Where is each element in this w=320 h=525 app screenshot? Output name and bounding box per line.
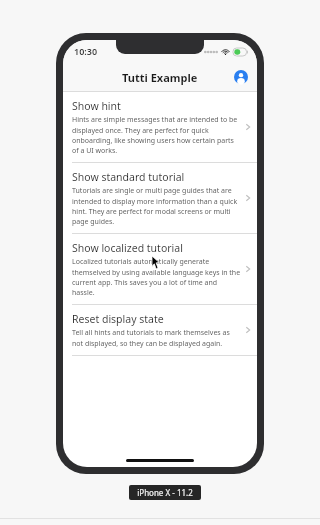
button[interactable]: Show localized tutorial <box>63 234 257 304</box>
staticText: Reset display state <box>72 312 164 326</box>
staticText: Show standard tutorial <box>72 170 185 184</box>
staticText: Show localized tutorial <box>72 241 183 255</box>
staticText: 10:30 <box>74 45 98 57</box>
staticText: Tutorials are single or multi page guide… <box>72 186 241 226</box>
button[interactable]: Show hint <box>63 92 257 162</box>
staticText: Hints are simple messages that are inten… <box>72 115 241 155</box>
staticText: Tell all hints and tutorials to mark the… <box>72 328 241 348</box>
staticText: Localized tutorials automatically genera… <box>72 257 241 297</box>
button[interactable]: Account <box>233 69 249 85</box>
staticText: iPhone X - 11.2 <box>137 487 193 498</box>
button[interactable]: Reset display state <box>63 305 257 355</box>
staticText: Tutti Example <box>122 70 198 85</box>
staticText: Show hint <box>72 99 121 113</box>
button[interactable]: Show standard tutorial <box>63 163 257 233</box>
